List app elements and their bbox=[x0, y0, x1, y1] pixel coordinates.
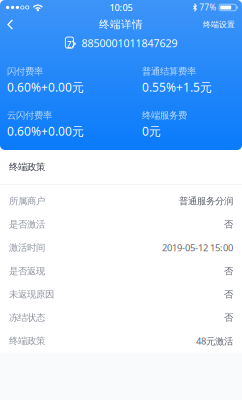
staticText: 8850001011847629 bbox=[81, 36, 177, 50]
staticText: 10:05 bbox=[109, 1, 132, 14]
button[interactable]: 返回 bbox=[0, 16, 26, 33]
button[interactable]: 终端设置 bbox=[193, 16, 242, 33]
staticText: 48元激活 bbox=[196, 335, 233, 347]
button[interactable]: 激活时间 bbox=[0, 236, 242, 259]
staticText: 是否返现 bbox=[9, 265, 45, 277]
button[interactable]: 所属商户 bbox=[0, 189, 242, 213]
staticText: 0.60%+0.00元 bbox=[7, 79, 84, 95]
staticText: 0.60%+0.00元 bbox=[7, 123, 84, 139]
staticText: 普通结算费率 bbox=[142, 66, 196, 77]
staticText: 2019-05-12 15:00 bbox=[162, 242, 233, 254]
staticText: 普通服务分润 bbox=[179, 195, 233, 207]
button[interactable]: 是否激活 bbox=[0, 213, 242, 236]
staticText: 0.55%+1.5元 bbox=[142, 79, 212, 95]
button[interactable]: 未返现原因 bbox=[0, 283, 242, 306]
staticText: 冻结状态 bbox=[9, 312, 45, 323]
staticText: 否 bbox=[224, 265, 233, 277]
staticText: 激活时间 bbox=[9, 242, 45, 253]
staticText: 是否激活 bbox=[9, 219, 45, 230]
staticText: 闪付费率 bbox=[7, 66, 43, 77]
staticText: 终端详情 bbox=[99, 18, 143, 31]
staticText: 终端政策 bbox=[9, 335, 45, 347]
staticText: 终端服务费 bbox=[142, 110, 187, 121]
button[interactable]: 是否返现 bbox=[0, 259, 242, 283]
staticText: 否 bbox=[224, 312, 233, 323]
staticText: 终端政策 bbox=[9, 161, 45, 173]
staticText: 77% bbox=[200, 2, 217, 13]
staticText: 终端设置 bbox=[203, 20, 235, 29]
button[interactable]: 冻结状态 bbox=[0, 306, 242, 329]
staticText: 否 bbox=[224, 219, 233, 230]
button[interactable]: 终端政策 bbox=[0, 329, 242, 353]
staticText: 所属商户 bbox=[9, 195, 45, 207]
staticText: 0元 bbox=[142, 123, 161, 139]
staticText: 云闪付费率 bbox=[7, 110, 52, 121]
staticText: Z bbox=[67, 39, 72, 50]
staticText: 否 bbox=[224, 289, 233, 300]
staticText: 未返现原因 bbox=[9, 289, 54, 300]
